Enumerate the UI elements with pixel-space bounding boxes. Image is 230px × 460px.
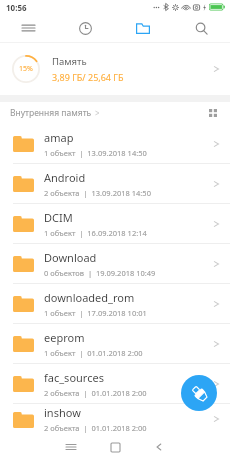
button[interactable]: Download bbox=[0, 244, 230, 284]
staticText: fac_sources bbox=[44, 370, 104, 385]
staticText: 2 объекта | 01.01.2018 2:00 bbox=[44, 388, 147, 398]
button[interactable]: DCIM bbox=[0, 204, 230, 244]
button[interactable]: downloaded_rom bbox=[0, 284, 230, 324]
staticText: 1 объект | 01.01.2018 2:00 bbox=[44, 348, 143, 358]
button[interactable]: eeprom bbox=[0, 324, 230, 364]
staticText: Память bbox=[52, 55, 87, 68]
staticText: 3,89 ГБ/ 25,64 ГБ bbox=[52, 71, 124, 83]
button[interactable]: Поиск bbox=[172, 14, 230, 42]
staticText: eeprom bbox=[44, 330, 85, 345]
button[interactable]: 15% bbox=[0, 43, 230, 95]
button[interactable]: amap bbox=[0, 124, 230, 164]
staticText: 2 объекта | 13.09.2018 14:50 bbox=[44, 188, 151, 198]
staticText: inshow bbox=[44, 405, 81, 420]
button[interactable]: Очистка bbox=[181, 375, 217, 411]
button[interactable]: fac_sources bbox=[0, 364, 230, 404]
staticText: DCIM bbox=[44, 210, 73, 225]
staticText: 2 объекта | 01.01.2018 2:00 bbox=[44, 423, 147, 433]
staticText: 1 объект | 17.09.2018 10:01 bbox=[44, 308, 147, 318]
button[interactable]: inshow bbox=[0, 404, 230, 434]
staticText: 10:56 bbox=[6, 2, 27, 13]
button[interactable]: Файлы bbox=[114, 14, 172, 42]
staticText: amap bbox=[44, 130, 74, 145]
button[interactable]: Меню bbox=[0, 14, 57, 42]
button[interactable]: Android bbox=[0, 164, 230, 204]
button[interactable]: Недавние bbox=[57, 14, 114, 42]
button[interactable]: Назад bbox=[137, 434, 181, 460]
button[interactable]: Недавние приложения bbox=[49, 434, 93, 460]
staticText: 15% bbox=[19, 64, 33, 74]
staticText: Download bbox=[44, 250, 97, 265]
staticText: Android bbox=[44, 170, 86, 185]
staticText: Внутренняя память bbox=[10, 107, 92, 119]
button[interactable]: Внутренняя память bbox=[0, 107, 100, 119]
staticText: 1 объект | 13.09.2018 14:50 bbox=[44, 148, 147, 158]
button[interactable]: Вид сеткой bbox=[202, 102, 224, 124]
button[interactable]: Главный экран bbox=[93, 434, 137, 460]
staticText: 0 объектов | 19.09.2018 10:49 bbox=[44, 268, 156, 278]
staticText: downloaded_rom bbox=[44, 290, 135, 305]
staticText: 1 объект | 16.09.2018 12:14 bbox=[44, 228, 147, 238]
